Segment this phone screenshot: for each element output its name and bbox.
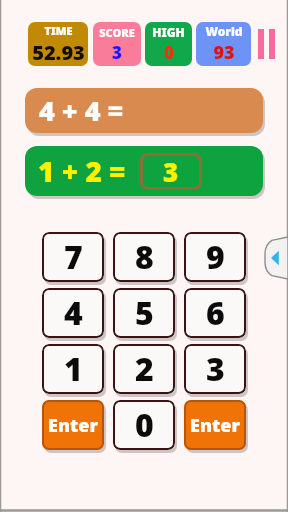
button[interactable]: Pause (258, 28, 278, 60)
staticText: 3 (206, 347, 225, 391)
staticText: Enter (190, 413, 240, 438)
staticText: 5 (135, 291, 154, 335)
staticText: 4 + 4 = (39, 92, 124, 129)
staticText: SCORE (99, 25, 135, 40)
staticText: HIGH (152, 24, 185, 40)
staticText: TIME (44, 23, 73, 38)
button[interactable]: 7 (42, 232, 104, 282)
staticText: 7 (64, 235, 83, 279)
staticText: 4 (64, 291, 83, 335)
staticText: 9 (206, 235, 225, 279)
staticText: 0 (135, 403, 154, 447)
button[interactable]: 1 (42, 344, 104, 394)
button[interactable]: 9 (184, 232, 246, 282)
button[interactable]: Enter (42, 400, 104, 450)
button[interactable]: 8 (113, 232, 175, 282)
button[interactable]: 3 (184, 344, 246, 394)
button[interactable]: Open panel (265, 237, 288, 279)
staticText: 1 + 2 = (38, 152, 126, 190)
button[interactable]: 4 + 4 = (25, 88, 263, 133)
button[interactable]: 1 + 2 = (25, 146, 263, 196)
button[interactable]: 6 (184, 288, 246, 338)
button[interactable]: Enter (184, 400, 246, 450)
button[interactable]: SCORE (93, 22, 141, 66)
staticText: World (205, 23, 243, 39)
button[interactable]: HIGH (145, 22, 192, 66)
staticText: 3 (112, 41, 122, 64)
button[interactable]: 5 (113, 288, 175, 338)
button[interactable]: 2 (113, 344, 175, 394)
staticText: 2 (135, 347, 154, 391)
button[interactable]: World (196, 22, 251, 66)
staticText: 93 (213, 40, 235, 65)
staticText: 0 (164, 41, 174, 64)
staticText: 1 (64, 347, 83, 391)
staticText: 6 (206, 291, 225, 335)
staticText: Enter (48, 413, 98, 438)
button[interactable]: 0 (113, 400, 175, 450)
staticText: 3 (163, 154, 179, 189)
staticText: 52.93 (32, 39, 85, 66)
staticText: 8 (135, 235, 154, 279)
button[interactable]: 4 (42, 288, 104, 338)
button[interactable]: TIME (28, 22, 88, 66)
